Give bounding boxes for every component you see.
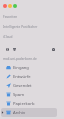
staticText: Archiv (13, 110, 25, 116)
button[interactable]: Zoom (13, 4, 17, 8)
button[interactable]: New message (50, 46, 57, 53)
staticText: mail.uni-paderborn.de (3, 57, 37, 61)
button[interactable]: Filter (11, 46, 18, 53)
staticText: Entwürfe (13, 74, 31, 80)
staticText: iCloud (3, 35, 13, 39)
staticText: Spam (13, 92, 25, 98)
button[interactable]: Gesendet (1, 81, 57, 90)
staticText: Eingang (13, 65, 29, 71)
button[interactable]: Sidebar (4, 46, 11, 53)
staticText: Intelligente Postfächer (3, 25, 38, 29)
button[interactable]: Entwürfe (1, 72, 57, 81)
button[interactable]: Papierkorb (1, 99, 57, 108)
button[interactable]: Minimise (8, 4, 12, 8)
button[interactable]: Close (3, 4, 7, 8)
button[interactable]: Spam (1, 90, 57, 99)
staticText: Papierkorb (13, 101, 35, 107)
button[interactable]: Archiv (1, 108, 57, 117)
staticText: Gesendet (13, 83, 32, 89)
button[interactable]: Eingang (1, 63, 57, 72)
staticText: Favoriten (3, 15, 18, 19)
